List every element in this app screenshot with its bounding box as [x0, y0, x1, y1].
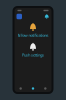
button[interactable]: Notifications [44, 14, 49, 19]
staticText: Push settings [22, 52, 44, 58]
button[interactable]: App [16, 14, 22, 19]
button[interactable]: Tab [39, 85, 51, 92]
button[interactable]: Tab [27, 85, 39, 92]
staticText: Allow notifications [17, 32, 48, 38]
button[interactable]: Tab [14, 85, 27, 92]
